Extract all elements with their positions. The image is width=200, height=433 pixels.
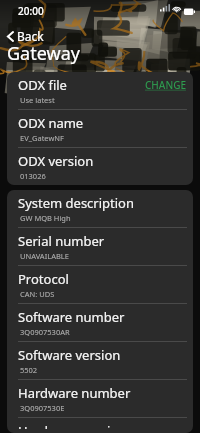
staticText: 5502 bbox=[20, 365, 38, 375]
staticText: 3Q0907530E bbox=[20, 403, 65, 413]
button[interactable]: ODX file bbox=[7, 72, 193, 109]
staticText: Back bbox=[17, 28, 44, 44]
button[interactable]: Hardware version bbox=[7, 418, 193, 433]
button[interactable]: ODX name bbox=[7, 110, 193, 147]
staticText: ODX version bbox=[18, 152, 94, 170]
staticText: GW MQB High bbox=[20, 213, 71, 223]
staticText: ODX file bbox=[18, 76, 67, 94]
staticText: UNAVAILABLE bbox=[20, 251, 69, 261]
button[interactable]: Protocol bbox=[7, 266, 193, 303]
staticText: CHANGE bbox=[145, 78, 186, 92]
staticText: Gateway bbox=[7, 41, 80, 66]
staticText: Serial number bbox=[18, 232, 105, 250]
button[interactable]: Serial number bbox=[7, 228, 193, 265]
staticText: 20:00 bbox=[18, 4, 44, 18]
button[interactable]: ODX version bbox=[7, 148, 193, 185]
button[interactable]: Software version bbox=[7, 342, 193, 379]
staticText: Protocol bbox=[18, 270, 69, 288]
staticText: EV_GatewNF bbox=[20, 133, 64, 143]
staticText: Hardware number bbox=[18, 384, 131, 402]
staticText: Hardware version bbox=[18, 422, 127, 429]
staticText: 3Q0907530AR bbox=[20, 327, 70, 337]
button[interactable]: CHANGE bbox=[145, 78, 186, 92]
staticText: CAN: UDS bbox=[20, 289, 55, 299]
button[interactable]: Hardware number bbox=[7, 380, 193, 417]
staticText: 013026 bbox=[20, 171, 46, 181]
staticText: Software version bbox=[18, 346, 121, 364]
staticText: System description bbox=[18, 194, 135, 212]
button[interactable]: Back bbox=[2, 26, 48, 46]
staticText: Software number bbox=[18, 308, 125, 326]
button[interactable]: System description bbox=[7, 190, 193, 227]
staticText: Use latest bbox=[20, 95, 55, 105]
staticText: ODX name bbox=[18, 114, 84, 132]
button[interactable]: Software number bbox=[7, 304, 193, 341]
